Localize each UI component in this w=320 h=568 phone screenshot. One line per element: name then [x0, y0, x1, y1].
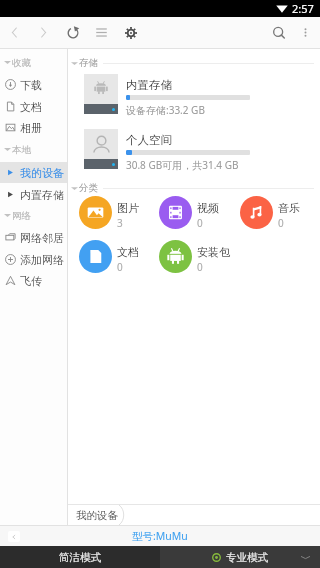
staticText: 本地: [12, 144, 31, 156]
staticText: 飞传: [20, 274, 42, 288]
button[interactable]: 简洁模式: [0, 546, 160, 568]
staticText: 设备存储:33.2 GB: [126, 103, 205, 117]
staticText: 网络邻居: [20, 231, 64, 245]
staticText: 型号:MuMu: [132, 529, 188, 543]
button[interactable]: 专业模式: [160, 546, 320, 568]
staticText: 0: [117, 260, 123, 274]
staticText: 安装包: [197, 245, 230, 259]
button[interactable]: 内置存储: [0, 184, 67, 205]
button[interactable]: Search: [268, 17, 289, 48]
button[interactable]: 视频: [159, 196, 237, 229]
button[interactable]: 相册: [0, 117, 67, 138]
staticText: 简洁模式: [59, 551, 101, 564]
staticText: 专业模式: [226, 551, 268, 564]
staticText: 内置存储: [20, 188, 64, 202]
staticText: 0: [197, 260, 203, 274]
staticText: 分类: [79, 182, 98, 194]
staticText: 相册: [20, 121, 42, 135]
staticText: 我的设备: [20, 166, 64, 180]
button[interactable]: 文档: [79, 240, 157, 273]
staticText: 3: [117, 216, 123, 230]
staticText: 存储: [79, 57, 98, 69]
staticText: 下载: [20, 78, 42, 92]
staticText: 音乐: [278, 201, 300, 215]
staticText: 内置存储: [126, 78, 172, 92]
staticText: 视频: [197, 201, 219, 215]
button[interactable]: 安装包: [159, 240, 237, 273]
staticText: 0: [197, 216, 203, 230]
button[interactable]: 内置存储: [68, 74, 320, 122]
staticText: 文档: [20, 100, 42, 114]
button[interactable]: More options: [295, 17, 315, 48]
staticText: 30.8 GB可用，共31.4 GB: [126, 158, 239, 172]
button[interactable]: Back: [8, 531, 20, 542]
staticText: 文档: [117, 245, 139, 259]
staticText: 0: [278, 216, 284, 230]
staticText: 收藏: [12, 57, 31, 69]
button[interactable]: Settings: [116, 17, 145, 48]
button[interactable]: 个人空间: [68, 129, 320, 177]
button[interactable]: Back: [0, 17, 29, 48]
staticText: 个人空间: [126, 133, 172, 147]
staticText: 2:57: [292, 1, 314, 16]
staticText: 网络: [12, 210, 31, 222]
button[interactable]: 下载: [0, 74, 67, 95]
staticText: 添加网络: [20, 253, 64, 267]
button[interactable]: 网络邻居: [0, 227, 67, 248]
button[interactable]: 音乐: [240, 196, 318, 229]
button[interactable]: Forward: [29, 17, 58, 48]
button[interactable]: 我的设备: [68, 505, 132, 525]
button[interactable]: 图片: [79, 196, 157, 229]
button[interactable]: 飞传: [0, 270, 67, 291]
button[interactable]: List view: [87, 17, 116, 48]
button[interactable]: Refresh: [58, 17, 87, 48]
button[interactable]: 添加网络: [0, 249, 67, 270]
button[interactable]: 文档: [0, 96, 67, 117]
staticText: 我的设备: [76, 509, 118, 522]
button[interactable]: 我的设备: [0, 162, 67, 183]
staticText: 图片: [117, 201, 139, 215]
